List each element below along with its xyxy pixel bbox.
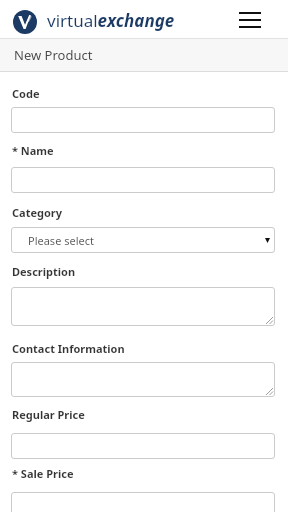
staticText: * Sale Price (12, 466, 74, 481)
button[interactable] (233, 6, 267, 34)
button[interactable]: Please select (11, 227, 275, 253)
staticText: Description (12, 264, 76, 279)
button[interactable] (11, 287, 275, 326)
staticText: Regular Price (12, 407, 85, 422)
staticText: Please select (28, 233, 94, 248)
button[interactable] (11, 107, 275, 133)
staticText: New Product (14, 46, 93, 64)
staticText: Code (12, 86, 40, 101)
button[interactable] (11, 492, 275, 512)
button[interactable] (11, 167, 275, 193)
staticText: Category (12, 205, 63, 220)
staticText: Contact Information (12, 341, 125, 356)
button[interactable] (11, 362, 275, 397)
staticText: * Name (12, 143, 54, 158)
button[interactable]: virtualexchange (47, 9, 175, 32)
button[interactable] (11, 433, 275, 459)
